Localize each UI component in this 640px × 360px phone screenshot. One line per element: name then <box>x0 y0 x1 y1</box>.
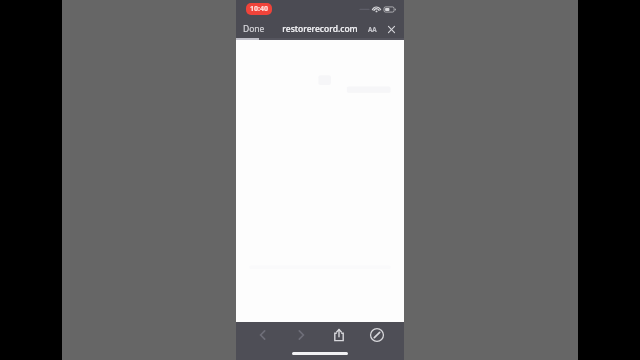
button[interactable]: Forward <box>286 323 316 347</box>
button[interactable]: Open in Safari <box>362 323 392 347</box>
button[interactable]: Done <box>236 19 271 39</box>
button[interactable]: Close <box>385 23 398 36</box>
staticText: AA <box>368 25 377 34</box>
staticText: 10:40 <box>250 4 268 14</box>
staticText: restorerecord.com <box>282 23 358 35</box>
button[interactable]: Share <box>324 323 354 347</box>
button[interactable]: Back <box>248 323 278 347</box>
button[interactable]: Text size options <box>366 23 379 36</box>
staticText: Done <box>243 23 265 35</box>
